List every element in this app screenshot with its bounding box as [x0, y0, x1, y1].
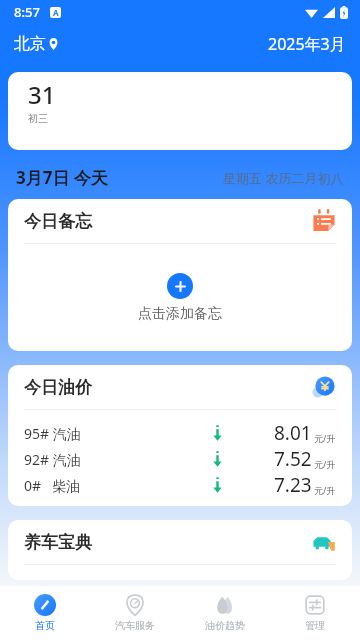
staticText: 元/升	[314, 484, 336, 496]
staticText: 今日油价	[24, 377, 92, 398]
staticText: 8:57	[14, 3, 40, 21]
button[interactable]: 92# 汽油	[24, 446, 336, 472]
staticText: 今日备忘	[24, 211, 92, 232]
staticText: 92# 汽油	[24, 450, 81, 469]
staticText: 0# 柴油	[24, 476, 80, 495]
staticText: 2025年3月	[268, 33, 346, 55]
button[interactable]: 今日备忘	[8, 199, 352, 351]
staticText: 8.01	[274, 420, 312, 446]
button[interactable]: 管理	[270, 586, 360, 639]
button[interactable]: 95# 汽油	[24, 420, 336, 446]
staticText: 北京	[14, 34, 46, 54]
staticText: A	[53, 7, 59, 18]
staticText: 3月7日 今天	[16, 166, 108, 189]
button[interactable]: 油价	[312, 375, 336, 399]
button[interactable]: 油价趋势	[180, 586, 270, 639]
staticText: 点击添加备忘	[138, 305, 222, 323]
button[interactable]: 31	[8, 72, 352, 150]
staticText: 31	[28, 78, 56, 111]
staticText: 元/升	[314, 432, 336, 444]
button[interactable]: 汽车服务	[90, 586, 180, 639]
staticText: 汽车服务	[115, 619, 155, 632]
button[interactable]: 北京	[14, 34, 58, 54]
staticText: 油价趋势	[205, 619, 245, 632]
staticText: 管理	[305, 619, 325, 632]
button[interactable]: 2025年3月	[268, 33, 346, 55]
button[interactable]: 备忘	[312, 209, 336, 233]
button[interactable]: 首页	[0, 586, 90, 639]
staticText: 7.52	[274, 446, 312, 472]
button[interactable]: 今日油价	[8, 365, 352, 506]
other: 养车宝典	[312, 530, 336, 554]
staticText: 养车宝典	[24, 532, 92, 553]
button[interactable]: 养车宝典	[8, 520, 352, 580]
staticText: 初三	[28, 112, 48, 125]
button[interactable]: 0# 柴油	[24, 472, 336, 498]
staticText: 元/升	[314, 458, 336, 470]
staticText: 星期五 农历二月初八	[223, 169, 344, 187]
staticText: 95# 汽油	[24, 424, 81, 443]
staticText: 7.23	[274, 472, 312, 498]
staticText: 首页	[35, 619, 55, 632]
button[interactable]: 点击添加备忘	[132, 267, 228, 329]
